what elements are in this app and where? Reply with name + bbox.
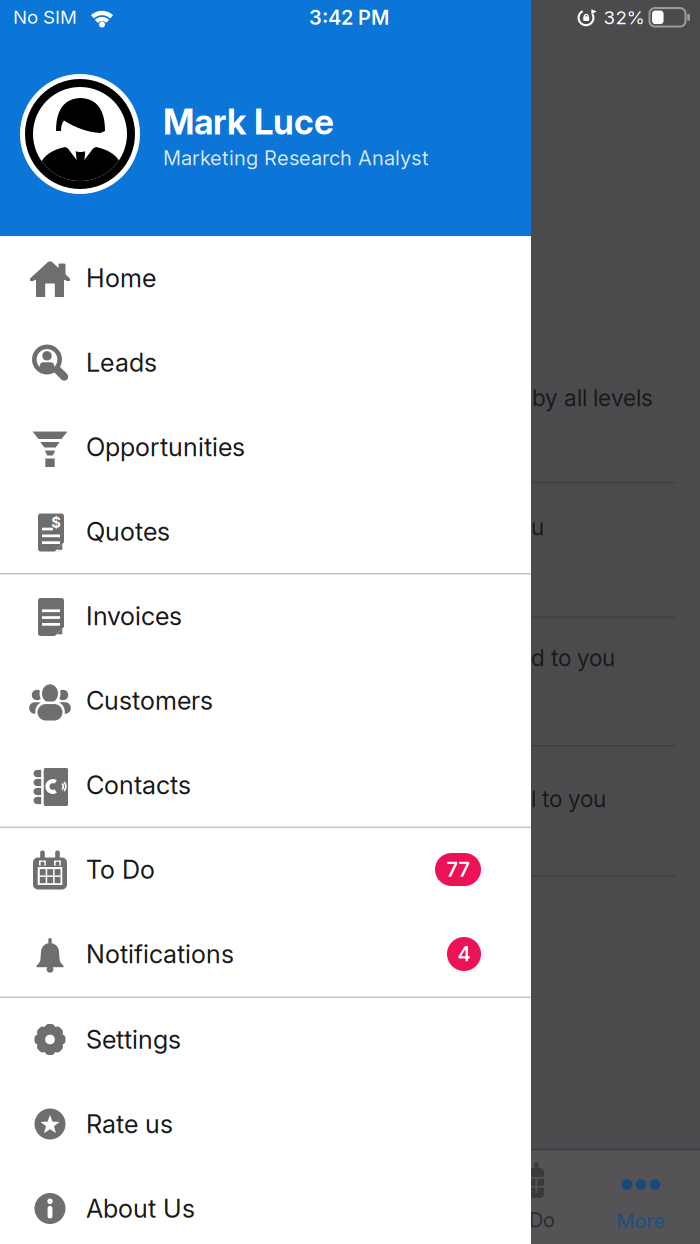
button[interactable]: Home	[0, 236, 531, 320]
staticText: Settings	[86, 1025, 181, 1054]
staticText: To Do	[86, 855, 155, 884]
staticText: Customers	[86, 686, 213, 715]
staticText: Leads	[86, 348, 157, 377]
staticText: Rate us	[86, 1109, 173, 1139]
button[interactable]: Opportunities	[0, 405, 531, 489]
button[interactable]: Contacts	[0, 743, 531, 827]
staticText: No SIM	[13, 6, 77, 28]
staticText: Notifications	[86, 939, 234, 969]
button[interactable]: About Us	[0, 1166, 531, 1244]
staticText: Invoices	[86, 601, 182, 631]
button[interactable]: Leads	[0, 320, 531, 404]
staticText: 77	[446, 858, 469, 881]
button[interactable]: Invoices	[0, 574, 531, 658]
button[interactable]: More	[586, 1150, 696, 1244]
button[interactable]: Rate us	[0, 1082, 531, 1166]
button[interactable]: $	[0, 489, 531, 573]
staticText: More	[616, 1209, 665, 1233]
staticText: Contacts	[86, 770, 191, 800]
staticText: 4	[457, 942, 470, 966]
button[interactable]: Settings	[0, 997, 531, 1081]
staticText: About Us	[86, 1194, 195, 1223]
button[interactable]: To Do	[0, 827, 531, 911]
staticText: by all levels	[532, 385, 653, 411]
button[interactable]: Notifications	[0, 912, 531, 996]
button[interactable]: Customers	[0, 658, 531, 742]
staticText: 32%	[603, 6, 644, 28]
staticText: Marketing Research Analyst	[163, 146, 429, 170]
staticText: Quotes	[86, 517, 170, 546]
staticText: 3:42 PM	[309, 6, 389, 29]
staticText: Mark Luce	[163, 102, 334, 142]
staticText: $	[51, 514, 61, 531]
staticText: Opportunities	[86, 432, 245, 462]
staticText: l to you	[531, 786, 606, 812]
staticText: u	[531, 514, 544, 540]
staticText: Do	[529, 1208, 555, 1232]
staticText: d to you	[531, 645, 615, 671]
staticText: Home	[86, 263, 156, 293]
